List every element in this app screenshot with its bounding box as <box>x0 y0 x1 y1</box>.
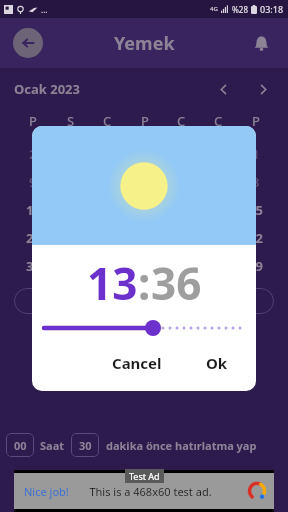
staticText: 15 <box>248 201 263 219</box>
staticText: 30 <box>79 438 92 453</box>
button[interactable]: 30 <box>71 433 99 457</box>
button[interactable]: 00 <box>6 433 34 457</box>
staticText: 22 <box>248 229 263 247</box>
staticText: 5 <box>141 145 149 163</box>
staticText: %28 <box>232 4 248 15</box>
staticText: 29 <box>248 257 263 275</box>
staticText: 26 <box>137 229 152 247</box>
staticText: This is a 468x60 test ad. <box>89 484 212 499</box>
staticText: 2 <box>29 145 37 163</box>
staticText: dakika önce hatırlatma yap <box>106 438 257 453</box>
staticText: P <box>252 112 260 130</box>
staticText: 28 <box>211 229 226 247</box>
staticText: 11 <box>100 173 115 191</box>
staticText: C <box>177 112 186 130</box>
staticText: 30 <box>26 257 41 275</box>
button[interactable]: Notifications <box>246 28 276 58</box>
button[interactable]: 13 <box>87 253 138 313</box>
staticText: 27 <box>174 229 189 247</box>
staticText: S <box>67 112 75 130</box>
staticText: 19 <box>137 201 152 219</box>
staticText: 36 <box>151 253 202 313</box>
staticText: 23 <box>26 229 41 247</box>
staticText: Saat <box>40 438 65 453</box>
button[interactable] <box>14 288 274 314</box>
staticText: 8 <box>252 173 260 191</box>
staticText: ... <box>41 4 48 15</box>
staticText: 13 <box>174 173 189 191</box>
staticText: : <box>138 253 151 313</box>
staticText: P <box>141 112 149 130</box>
staticText: 03:18 <box>260 3 284 15</box>
button[interactable]: Previous month <box>212 78 234 100</box>
staticText: Nice job! <box>24 484 69 499</box>
button[interactable]: Back <box>13 28 43 58</box>
staticText: 25 <box>100 229 115 247</box>
staticText: 1 <box>252 145 260 163</box>
button[interactable]: Nice job! <box>14 470 274 512</box>
staticText: P <box>29 112 37 130</box>
staticText: 9 <box>29 173 37 191</box>
button[interactable]: Cancel <box>106 349 168 377</box>
staticText: Ç <box>103 112 112 130</box>
button[interactable]: Next month <box>252 78 274 100</box>
staticText: Ok <box>206 353 228 373</box>
staticText: C <box>214 112 223 130</box>
staticText: 16 <box>26 201 41 219</box>
staticText: 13 <box>87 253 138 313</box>
staticText: Ocak 2023 <box>14 80 80 98</box>
staticText: 00 <box>14 438 27 453</box>
staticText: 24 <box>63 229 78 247</box>
staticText: Test Ad <box>129 470 160 482</box>
staticText: Cancel <box>112 353 162 373</box>
staticText: 4G <box>210 5 218 13</box>
button[interactable]: 36 <box>151 253 202 313</box>
staticText: Yemek <box>114 31 175 56</box>
button[interactable]: Ok <box>200 349 234 377</box>
button[interactable]: Hour slider <box>44 313 244 343</box>
